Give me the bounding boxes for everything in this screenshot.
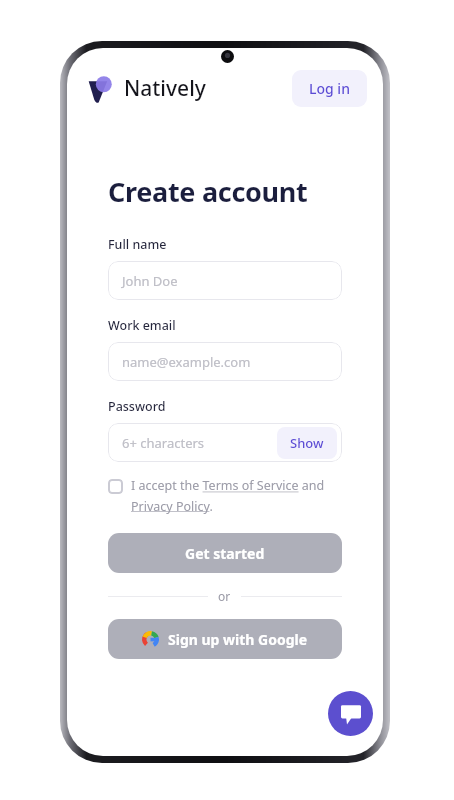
button[interactable]: Get started bbox=[108, 533, 342, 573]
staticText: Work email bbox=[108, 317, 176, 334]
button[interactable]: I accept the Terms of Service and Privac… bbox=[131, 477, 342, 514]
button[interactable]: 6+ characters bbox=[108, 423, 342, 462]
staticText: Log in bbox=[309, 79, 350, 98]
staticText: Natively bbox=[124, 74, 206, 103]
button[interactable]: Sign up with Google bbox=[108, 619, 342, 659]
staticText: name@example.com bbox=[122, 353, 251, 371]
staticText: Show bbox=[290, 434, 324, 452]
button[interactable]: name@example.com bbox=[108, 342, 342, 381]
staticText: Sign up with Google bbox=[168, 630, 308, 649]
staticText: 6+ characters bbox=[122, 434, 205, 452]
button[interactable]: Accept terms and conditions bbox=[108, 479, 123, 494]
staticText: Full name bbox=[108, 236, 167, 253]
button[interactable]: Open support chat bbox=[328, 691, 373, 736]
staticText: John Doe bbox=[122, 272, 178, 290]
button[interactable]: Log in bbox=[292, 70, 367, 107]
staticText: Password bbox=[108, 398, 166, 415]
staticText: Create account bbox=[108, 173, 308, 210]
button[interactable]: Show bbox=[277, 427, 337, 459]
button[interactable]: John Doe bbox=[108, 261, 342, 300]
staticText: or bbox=[218, 588, 231, 604]
staticText: Get started bbox=[185, 544, 265, 563]
